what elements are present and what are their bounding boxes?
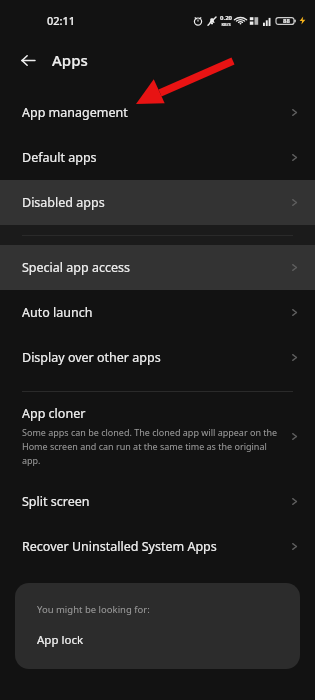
button[interactable]: Disabled apps [0, 180, 315, 225]
staticText: Recover Uninstalled System Apps [22, 538, 290, 555]
staticText: Auto launch [22, 304, 290, 321]
button[interactable]: Split screen [0, 479, 315, 524]
staticText: Display over other apps [22, 349, 290, 366]
button[interactable]: App management [0, 90, 315, 135]
staticText: Apps [52, 50, 88, 70]
staticText: App management [22, 104, 290, 121]
button[interactable]: App lock [37, 632, 84, 648]
button[interactable]: Recover Uninstalled System Apps [0, 524, 315, 569]
staticText: You might be looking for: [37, 603, 150, 616]
staticText: KB/S [221, 22, 231, 27]
staticText: Some apps can be cloned. The cloned app … [22, 426, 282, 467]
staticText: 0.20 [220, 14, 232, 22]
button[interactable]: Special app access [0, 245, 315, 290]
staticText: 02:11 [47, 13, 76, 28]
staticText: App lock [37, 632, 84, 648]
button[interactable]: Auto launch [0, 290, 315, 335]
staticText: Split screen [22, 493, 290, 510]
button[interactable]: App cloner [0, 403, 315, 479]
staticText: 88 [283, 17, 290, 25]
staticText: Disabled apps [22, 194, 290, 211]
button[interactable]: Display over other apps [0, 335, 315, 380]
staticText: Default apps [22, 149, 290, 166]
staticText: Special app access [22, 259, 290, 276]
button[interactable]: Default apps [0, 135, 315, 180]
button[interactable]: Back [14, 46, 42, 74]
staticText: App cloner [22, 405, 86, 422]
